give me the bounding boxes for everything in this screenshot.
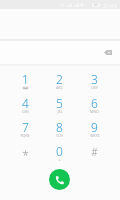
staticText: 4 — [22, 95, 29, 111]
staticText: * — [22, 147, 29, 163]
button[interactable]: Call — [49, 169, 70, 190]
staticText: + — [58, 157, 61, 162]
button[interactable]: 4 — [8, 96, 42, 120]
button[interactable]: 9 — [77, 120, 112, 144]
button[interactable]: 0 — [42, 144, 77, 168]
button[interactable]: 8 — [42, 120, 77, 144]
staticText: 21:45 — [103, 2, 117, 9]
staticText: 1 — [22, 71, 29, 87]
staticText: GHI — [22, 109, 29, 114]
button[interactable]: 5 — [42, 96, 77, 120]
staticText: 8 — [56, 119, 63, 135]
button[interactable]: 1 — [8, 72, 42, 96]
button[interactable]: * — [8, 144, 42, 168]
staticText: 6 — [91, 95, 98, 111]
staticText: JKL — [57, 109, 63, 114]
staticText: 2 — [56, 71, 63, 87]
staticText: 7 — [22, 119, 29, 135]
button[interactable]: 7 — [8, 120, 42, 144]
staticText: # — [91, 145, 98, 159]
button[interactable]: # — [77, 144, 112, 168]
button[interactable]: 3 — [77, 72, 112, 96]
staticText: 0 — [56, 143, 63, 159]
staticText: 63 — [94, 3, 98, 7]
button[interactable]: 6 — [77, 96, 112, 120]
staticText: WXYZ — [90, 133, 100, 138]
staticText: TUV — [56, 133, 63, 138]
button[interactable]: 2 — [42, 72, 77, 96]
staticText: MNO — [90, 109, 99, 114]
staticText: DEF — [91, 85, 98, 90]
staticText: ABC — [56, 85, 63, 90]
button[interactable]: Backspace — [100, 44, 116, 60]
staticText: 9 — [91, 119, 98, 135]
staticText: PQRS — [20, 133, 30, 138]
staticText: 5 — [56, 95, 63, 111]
staticText: 3 — [91, 71, 98, 87]
